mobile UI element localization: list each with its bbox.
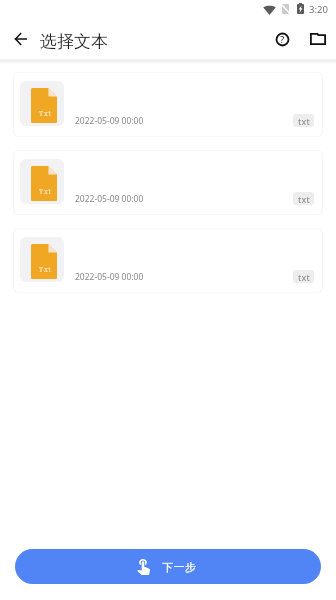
staticText: ? [280, 33, 285, 46]
staticText: 2022-05-09 00:00 [75, 271, 144, 283]
button[interactable]: Txt [13, 228, 323, 293]
button[interactable]: Help [268, 22, 300, 58]
staticText: txt [298, 271, 310, 283]
button[interactable]: Folder [300, 22, 335, 58]
button[interactable]: 下一步 [15, 549, 321, 584]
staticText: 3:20 [309, 3, 328, 16]
staticText: txt [298, 193, 310, 205]
button[interactable]: Txt [13, 72, 323, 137]
staticText: 2022-05-09 00:00 [75, 193, 144, 205]
staticText: 选择文本 [40, 31, 108, 52]
staticText: Txt [39, 265, 52, 274]
staticText: Txt [39, 187, 52, 196]
button[interactable]: Back [0, 22, 42, 58]
staticText: 下一步 [162, 560, 197, 574]
button[interactable]: Txt [13, 150, 323, 215]
staticText: txt [298, 115, 310, 127]
staticText: Txt [39, 109, 52, 118]
staticText: 2022-05-09 00:00 [75, 115, 144, 127]
